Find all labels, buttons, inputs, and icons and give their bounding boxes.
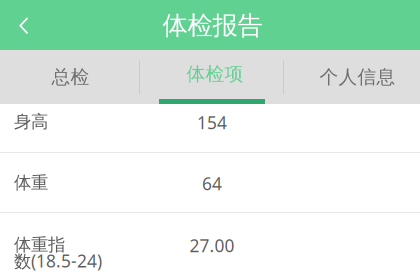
- staticText: 个人信息: [319, 65, 395, 88]
- staticText: 总检: [51, 65, 89, 88]
- button[interactable]: 体重: [0, 153, 420, 212]
- staticText: 64: [202, 172, 222, 195]
- staticText: 154: [197, 111, 227, 134]
- button[interactable]: 体重指: [0, 213, 420, 280]
- button[interactable]: 体检项: [141, 50, 289, 104]
- staticText: 27.00: [189, 234, 234, 257]
- staticText: 体重: [14, 172, 48, 193]
- button[interactable]: 总检: [0, 50, 141, 104]
- staticText: 数(18.5-24): [14, 249, 102, 272]
- button[interactable]: 身高: [0, 104, 420, 152]
- staticText: 体检报告: [162, 10, 262, 41]
- staticText: 体检项: [186, 62, 243, 85]
- staticText: 体重指: [14, 234, 65, 255]
- button[interactable]: Back: [0, 0, 48, 50]
- button[interactable]: 个人信息: [289, 50, 420, 104]
- staticText: 身高: [14, 111, 48, 132]
